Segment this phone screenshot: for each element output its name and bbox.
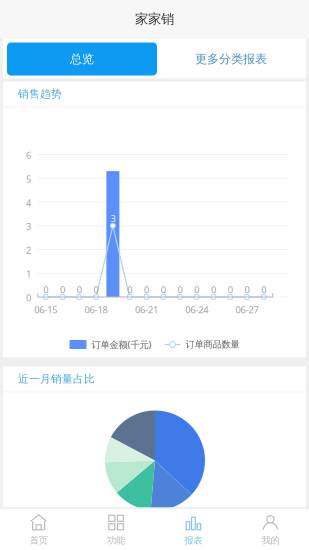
staticText: 更多分类报表 [195, 52, 267, 66]
button[interactable]: 总览 [7, 42, 157, 75]
staticText: 06-24 [185, 303, 208, 316]
staticText: 06-18 [85, 303, 108, 316]
staticText: 0 [244, 283, 249, 296]
button[interactable]: 报表 [154, 508, 232, 550]
staticText: 0 [161, 283, 166, 296]
button[interactable]: 更多分类报表 [157, 42, 305, 75]
staticText: 销售趋势 [18, 87, 62, 100]
staticText: 订单商品数量 [185, 339, 239, 350]
staticText: 我的 [261, 535, 279, 546]
staticText: 近一月销量占比 [18, 372, 95, 385]
button[interactable]: 我的 [232, 508, 309, 550]
button[interactable]: 首页 [0, 508, 77, 550]
staticText: 0 [211, 283, 216, 296]
staticText: 1 [26, 268, 31, 280]
staticText: 订单金额(千元) [91, 338, 151, 351]
staticText: 3 [110, 212, 115, 225]
staticText: 0 [177, 283, 182, 296]
staticText: 0 [94, 283, 99, 296]
staticText: 3 [26, 220, 31, 233]
staticText: 2 [26, 244, 31, 256]
staticText: 总览 [70, 52, 94, 66]
staticText: 0 [127, 283, 132, 296]
button[interactable]: 功能 [77, 508, 154, 550]
staticText: 首页 [30, 535, 48, 546]
staticText: 06-21 [135, 303, 158, 316]
staticText: 5 [26, 173, 31, 185]
staticText: 4 [26, 196, 31, 209]
staticText: 0 [43, 283, 48, 296]
staticText: 0 [77, 283, 82, 296]
staticText: 0 [60, 283, 65, 296]
staticText: 0 [261, 283, 266, 296]
staticText: 0 [194, 283, 199, 296]
staticText: 0 [144, 283, 149, 296]
staticText: 家家销 [135, 11, 174, 27]
staticText: 报表 [184, 535, 202, 546]
staticText: 06-15 [34, 303, 57, 316]
staticText: 6 [26, 149, 31, 161]
staticText: 功能 [107, 535, 125, 546]
staticText: 0 [228, 283, 233, 296]
staticText: 06-27 [235, 303, 258, 316]
staticText: 0 [26, 291, 31, 304]
